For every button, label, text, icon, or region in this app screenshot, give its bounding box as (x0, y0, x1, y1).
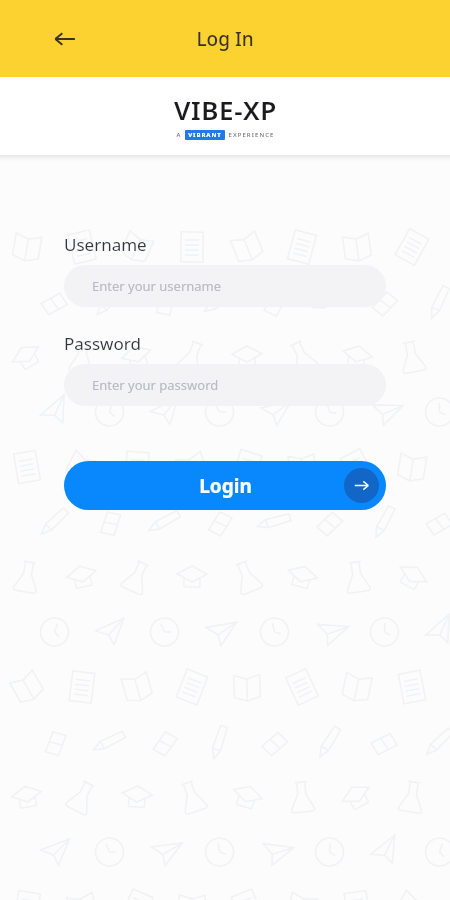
staticText: Password (64, 332, 141, 355)
button[interactable]: Enter your username (64, 265, 386, 307)
staticText: Username (64, 233, 147, 256)
staticText: Enter your password (92, 376, 219, 394)
button[interactable]: Login (64, 461, 386, 510)
staticText: Enter your username (92, 277, 222, 295)
staticText: VIBE-XP (174, 92, 277, 127)
staticText: VIBRANT (188, 131, 222, 139)
staticText: EXPERIENCE (228, 131, 275, 139)
staticText: Login (199, 473, 252, 499)
staticText: A (176, 131, 182, 139)
button[interactable]: Back (44, 18, 86, 60)
button[interactable]: Enter your password (64, 364, 386, 406)
staticText: Log In (196, 26, 254, 52)
